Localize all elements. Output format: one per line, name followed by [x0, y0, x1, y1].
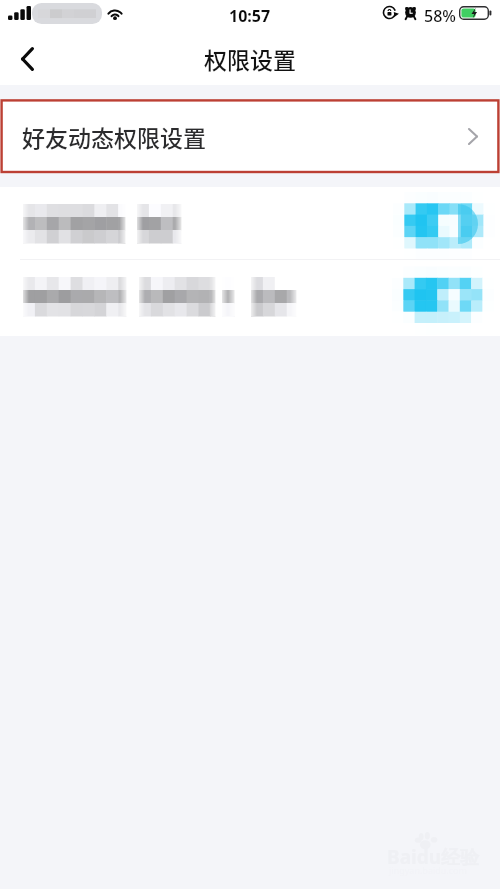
- staticText: 10:57: [229, 5, 271, 27]
- staticText: 权限设置: [204, 42, 296, 75]
- button[interactable]: Toggle: [0, 187, 500, 260]
- button[interactable]: 好友动态权限设置: [0, 100, 500, 173]
- staticText: 好友动态权限设置: [22, 120, 206, 153]
- button[interactable]: Toggle: [0, 260, 500, 333]
- button[interactable]: Toggle: [396, 195, 492, 253]
- button[interactable]: Back: [0, 32, 54, 85]
- staticText: 58%: [424, 5, 456, 27]
- other: Carrier: [30, 1, 104, 26]
- button[interactable]: Toggle: [396, 268, 492, 326]
